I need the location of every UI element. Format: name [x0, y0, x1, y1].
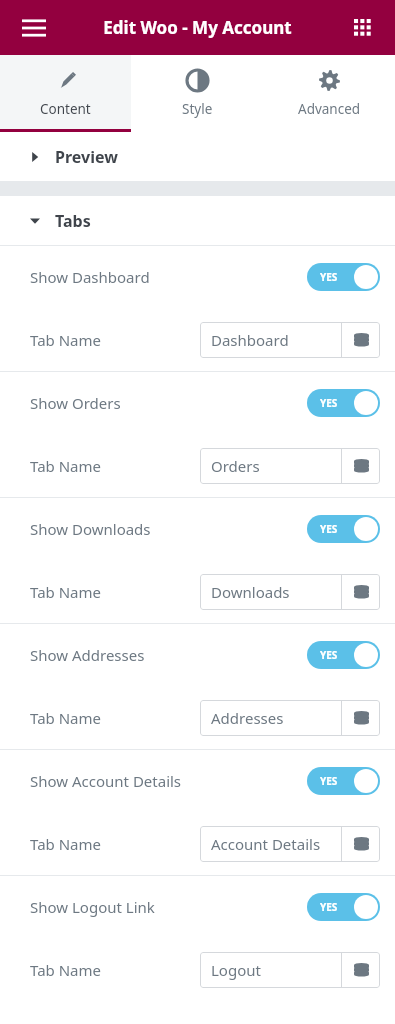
button[interactable]: Dynamic tags — [342, 322, 380, 358]
staticText: Tab Name — [30, 834, 101, 854]
button[interactable]: Widgets — [341, 6, 385, 50]
button[interactable]: Show Logout Link — [0, 876, 395, 938]
staticText: Logout — [211, 960, 261, 980]
button[interactable]: YES — [307, 515, 380, 543]
staticText: Account Details — [211, 834, 321, 854]
staticText: YES — [320, 774, 338, 788]
staticText: Show Dashboard — [30, 267, 150, 287]
button[interactable]: Orders — [200, 448, 341, 484]
button[interactable]: Addresses — [200, 700, 341, 736]
staticText: Tabs — [55, 210, 91, 232]
button[interactable]: Dashboard — [200, 322, 341, 358]
staticText: YES — [320, 900, 338, 914]
staticText: Tab Name — [30, 708, 101, 728]
staticText: YES — [320, 396, 338, 410]
staticText: Tab Name — [30, 960, 101, 980]
button[interactable]: YES — [307, 389, 380, 417]
button[interactable]: Content — [0, 55, 131, 132]
button[interactable]: Tabs — [0, 196, 395, 245]
staticText: Show Downloads — [30, 519, 151, 539]
button[interactable]: Dynamic tags — [342, 574, 380, 610]
staticText: Orders — [211, 456, 260, 476]
button[interactable]: YES — [307, 767, 380, 795]
button[interactable]: Show Dashboard — [0, 246, 395, 308]
button[interactable]: Advanced — [263, 55, 395, 132]
button[interactable]: YES — [307, 263, 380, 291]
button[interactable]: Dynamic tags — [342, 700, 380, 736]
staticText: Show Addresses — [30, 645, 145, 665]
staticText: Dashboard — [211, 330, 289, 350]
button[interactable]: YES — [307, 893, 380, 921]
staticText: Show Logout Link — [30, 897, 155, 917]
staticText: Edit Woo - My Account — [103, 16, 292, 39]
button[interactable]: Downloads — [200, 574, 341, 610]
staticText: Tab Name — [30, 330, 101, 350]
button[interactable]: Dynamic tags — [342, 826, 380, 862]
button[interactable]: Show Orders — [0, 372, 395, 434]
staticText: Style — [182, 100, 213, 118]
button[interactable]: Show Account Details — [0, 750, 395, 812]
button[interactable]: Menu — [12, 6, 56, 50]
staticText: Addresses — [211, 708, 284, 728]
button[interactable]: Dynamic tags — [342, 448, 380, 484]
staticText: Tab Name — [30, 456, 101, 476]
button[interactable]: Dynamic tags — [342, 952, 380, 988]
button[interactable]: Show Downloads — [0, 498, 395, 560]
staticText: Downloads — [211, 582, 290, 602]
staticText: Tab Name — [30, 582, 101, 602]
button[interactable]: YES — [307, 641, 380, 669]
button[interactable]: Show Addresses — [0, 624, 395, 686]
staticText: YES — [320, 522, 338, 536]
button[interactable]: Preview — [0, 132, 395, 181]
button[interactable]: Logout — [200, 952, 341, 988]
staticText: Content — [40, 100, 91, 118]
staticText: Show Account Details — [30, 771, 182, 791]
button[interactable]: Account Details — [200, 826, 341, 862]
staticText: Advanced — [298, 100, 361, 118]
staticText: Preview — [55, 146, 118, 168]
staticText: YES — [320, 270, 338, 284]
staticText: YES — [320, 648, 338, 662]
button[interactable]: Style — [131, 55, 263, 132]
staticText: Show Orders — [30, 393, 121, 413]
